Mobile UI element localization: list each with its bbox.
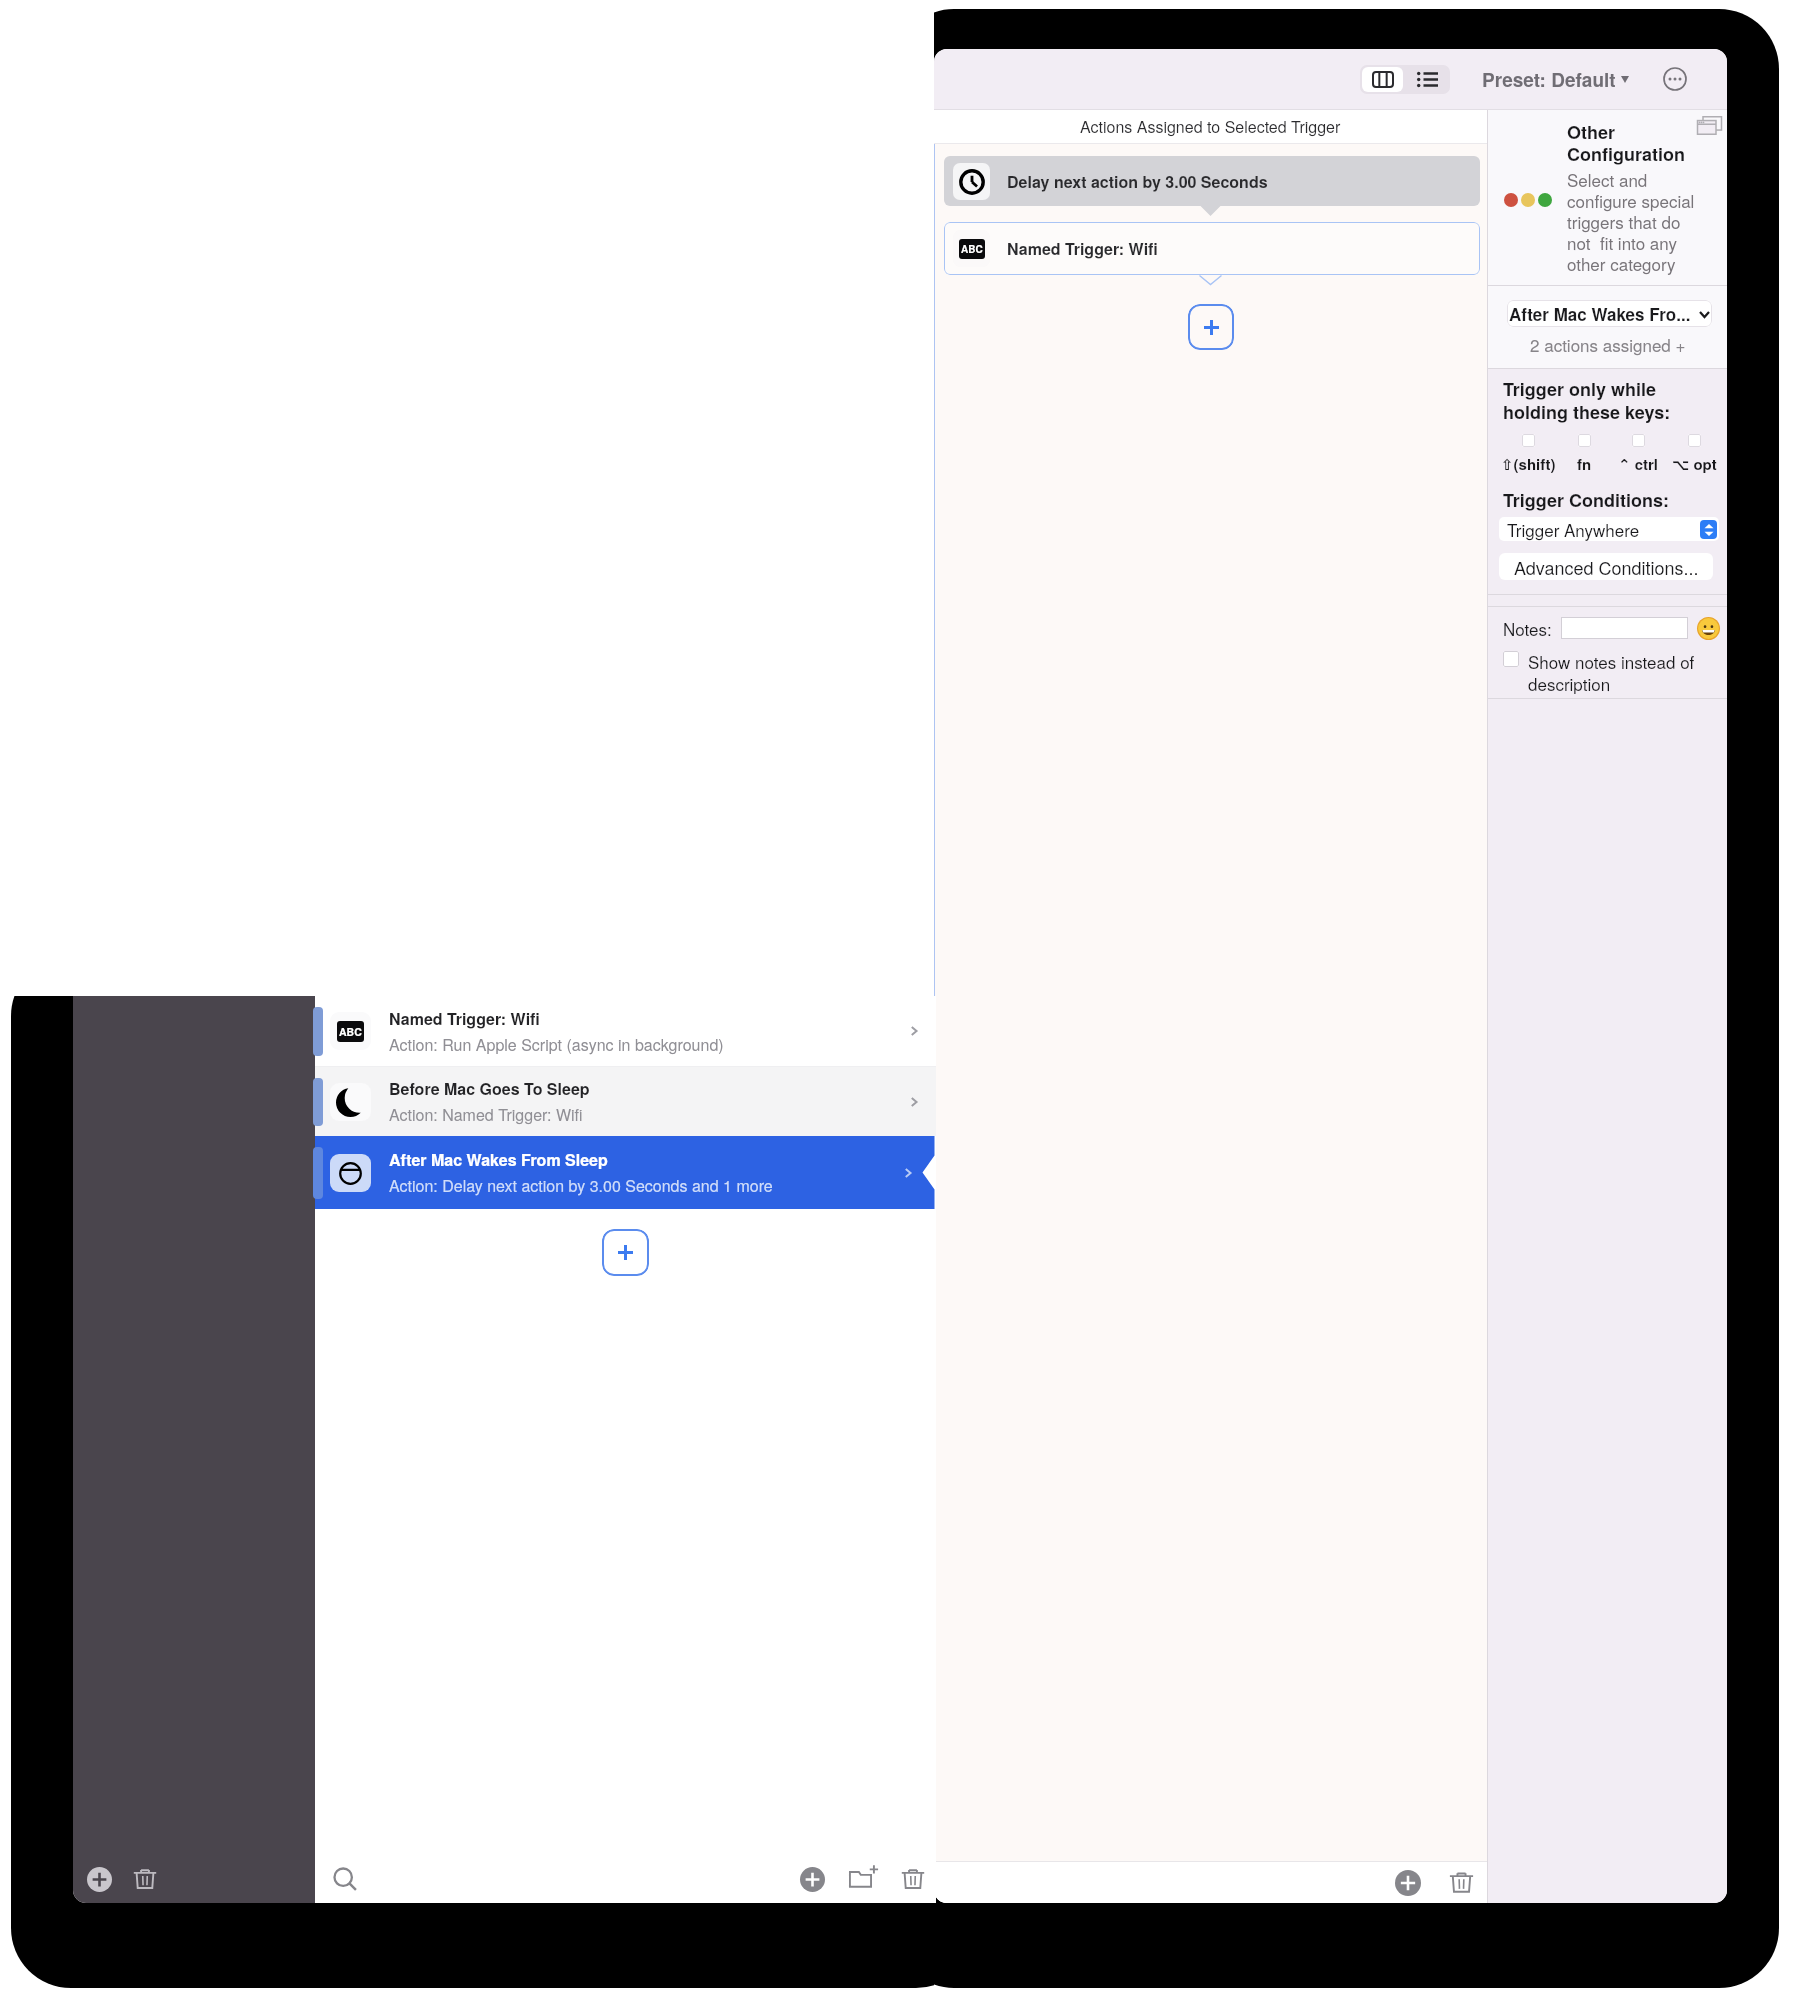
staticText: Advanced Conditions... xyxy=(1514,554,1699,580)
button[interactable]: Trigger Anywhere xyxy=(1499,517,1719,541)
button[interactable]: Notes xyxy=(1561,617,1688,639)
staticText: Notes: xyxy=(1503,616,1552,640)
staticText: Named Trigger: Wifi xyxy=(1007,237,1158,260)
button[interactable]: fn xyxy=(1558,434,1611,474)
staticText: Trigger Anywhere xyxy=(1507,517,1640,541)
staticText: Action: Run Apple Script (async in backg… xyxy=(389,1033,724,1056)
staticText: Actions Assigned to Selected Trigger xyxy=(1080,115,1341,138)
button[interactable]: ABC xyxy=(315,996,936,1066)
staticText: Preset: Default xyxy=(1482,66,1616,93)
staticText: Named Trigger: Wifi xyxy=(389,1007,540,1030)
button[interactable]: Add macro xyxy=(798,1865,827,1894)
button[interactable]: List view xyxy=(1405,65,1450,94)
button[interactable]: ⌥ opt xyxy=(1665,434,1723,474)
button[interactable]: Preset: Default xyxy=(1482,66,1629,93)
staticText: ⌃ ctrl xyxy=(1618,453,1659,474)
staticText: ⌥ opt xyxy=(1672,453,1717,474)
button[interactable]: Add action xyxy=(1188,304,1234,350)
button[interactable]: Add trigger xyxy=(602,1229,649,1276)
button[interactable]: Delay next action by 3.00 Seconds xyxy=(944,156,1480,206)
button[interactable]: Advanced Conditions... xyxy=(1499,553,1713,580)
button[interactable]: New folder xyxy=(848,1863,880,1895)
button[interactable]: ⌃ ctrl xyxy=(1611,434,1665,474)
staticText: Action: Named Trigger: Wifi xyxy=(389,1103,583,1126)
button[interactable]: Delete macro xyxy=(899,1865,927,1893)
staticText: Action: Delay next action by 3.00 Second… xyxy=(389,1174,773,1197)
button[interactable]: Add action xyxy=(1393,1868,1423,1898)
staticText: 2 actions assigned + xyxy=(1530,332,1686,356)
staticText: ABC xyxy=(961,242,983,256)
button[interactable]: Column view xyxy=(1362,67,1403,92)
staticText: fn xyxy=(1577,453,1592,474)
staticText: After Mac Wakes From Sleep xyxy=(389,1148,608,1171)
button[interactable]: Delete macro group xyxy=(131,1865,159,1893)
staticText: Trigger only while holding these keys: xyxy=(1503,376,1671,425)
staticText: Delay next action by 3.00 Seconds xyxy=(1007,170,1268,193)
staticText: After Mac Wakes Fro... xyxy=(1509,302,1691,326)
staticText: ⇧(shift) xyxy=(1501,453,1556,474)
button[interactable]: After Mac Wakes From Sleep xyxy=(315,1136,936,1209)
button[interactable]: After Mac Wakes Fro... xyxy=(1507,300,1712,327)
button[interactable]: Show notes instead of description xyxy=(1503,651,1519,667)
button[interactable]: Add macro group xyxy=(85,1865,114,1894)
button[interactable]: Delete action xyxy=(1447,1868,1476,1897)
button[interactable]: Before Mac Goes To Sleep xyxy=(315,1067,936,1136)
button[interactable]: More options xyxy=(1663,67,1687,91)
staticText: Other Configuration xyxy=(1567,119,1686,167)
staticText: Before Mac Goes To Sleep xyxy=(389,1077,590,1100)
button[interactable]: ABC xyxy=(944,222,1480,275)
staticText: Show notes instead of description xyxy=(1528,649,1695,695)
staticText: Select and configure special triggers th… xyxy=(1567,167,1695,276)
button[interactable]: ⇧(shift) xyxy=(1498,434,1558,474)
staticText: ABC xyxy=(339,1024,362,1039)
staticText: Trigger Conditions: xyxy=(1503,487,1669,513)
button[interactable]: Search xyxy=(331,1865,360,1894)
